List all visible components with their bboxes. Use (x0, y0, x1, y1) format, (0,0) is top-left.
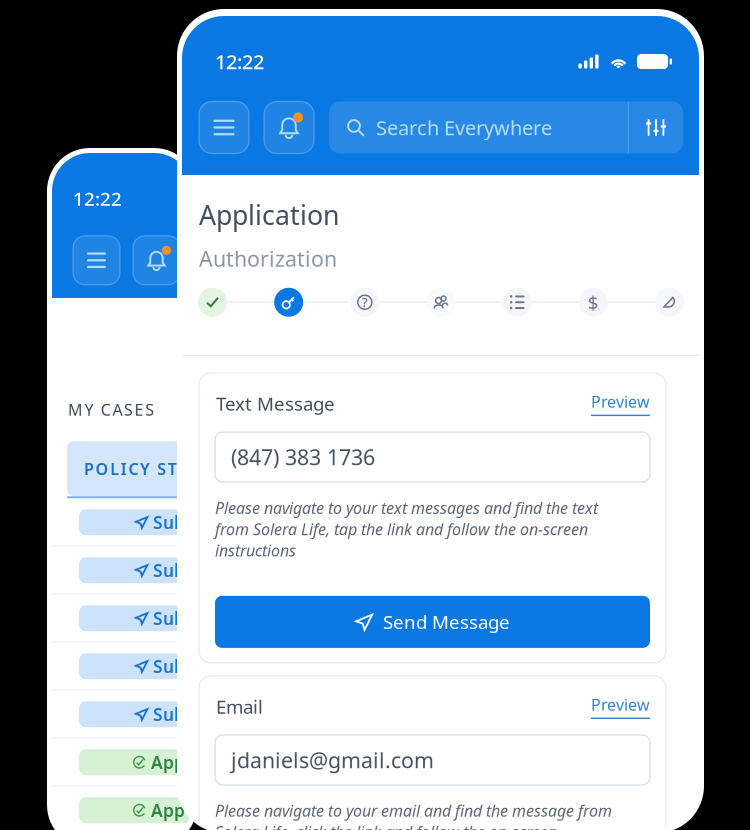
staticText: MY CASES (68, 399, 154, 420)
staticText: Preview (591, 391, 650, 412)
staticText: Sub (153, 703, 185, 726)
staticText: Please navigate to your text messages an… (215, 497, 598, 561)
button[interactable]: Preview (591, 391, 650, 416)
button[interactable]: Preview (591, 694, 650, 719)
staticText: App (151, 799, 185, 822)
button[interactable]: Search Everywhere (329, 101, 628, 153)
staticText: Email (216, 694, 263, 719)
staticText: ? (362, 293, 368, 311)
staticText: Text Message (216, 391, 335, 416)
staticText: POLICY STA (84, 458, 188, 479)
staticText: Application (199, 197, 339, 232)
staticText: Sub (153, 655, 185, 678)
button[interactable]: Menu (199, 101, 249, 153)
button[interactable]: Notifications (264, 101, 314, 153)
staticText: 12:22 (215, 48, 264, 75)
staticText: 12:22 (73, 186, 122, 211)
button[interactable]: Filters (629, 101, 683, 153)
staticText: App (151, 751, 185, 774)
staticText: Search Everywhere (376, 114, 552, 141)
staticText: Sub (153, 559, 185, 582)
staticText: (847) 383 1736 (231, 443, 375, 471)
staticText: Send Message (383, 609, 510, 634)
staticText: jdaniels@gmail.com (231, 746, 434, 774)
staticText: Please navigate to your email and find t… (215, 800, 612, 830)
staticText: Authorization (199, 244, 337, 273)
staticText: Sub (153, 607, 185, 630)
staticText: Sub (153, 511, 185, 534)
staticText: $ (588, 290, 599, 315)
button[interactable]: Send Message (215, 596, 650, 648)
staticText: Preview (591, 694, 650, 715)
